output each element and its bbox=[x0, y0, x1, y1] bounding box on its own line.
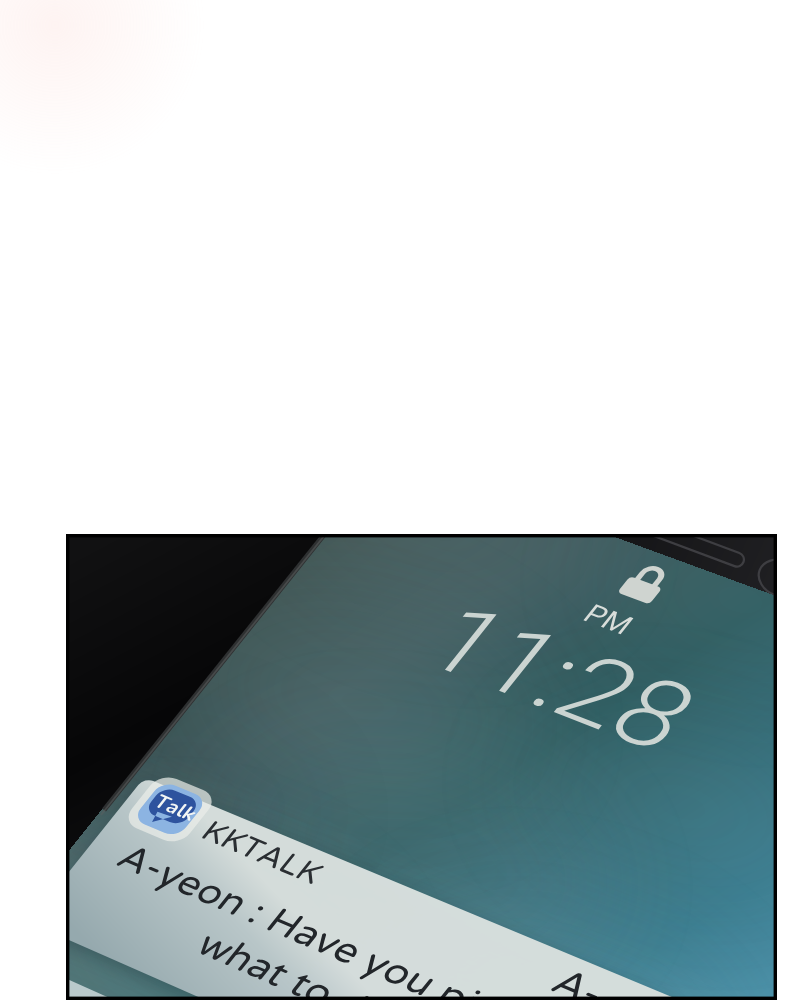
button[interactable]: Comic panel: phone lock screen with KKTA… bbox=[0, 0, 800, 1000]
